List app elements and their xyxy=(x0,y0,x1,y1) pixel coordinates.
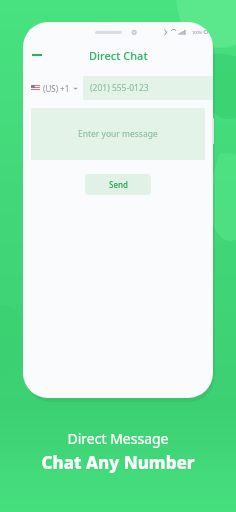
staticText: Send xyxy=(109,179,128,190)
staticText: Direct Chat xyxy=(89,48,148,63)
button[interactable]: (US) +1 xyxy=(23,76,213,100)
staticText: (201) 555-0123 xyxy=(90,82,149,94)
button[interactable]: (201) 555-0123 xyxy=(83,76,213,100)
button[interactable]: Send xyxy=(85,174,151,195)
staticText: Enter your message xyxy=(78,128,158,140)
staticText: Direct Message xyxy=(67,429,169,448)
button[interactable]: Enter your message xyxy=(31,108,205,160)
staticText: (US) +1 xyxy=(43,83,70,94)
staticText: 100% xyxy=(192,30,203,35)
staticText: Chat Any Number xyxy=(41,451,195,474)
button[interactable]: Back xyxy=(29,47,45,63)
